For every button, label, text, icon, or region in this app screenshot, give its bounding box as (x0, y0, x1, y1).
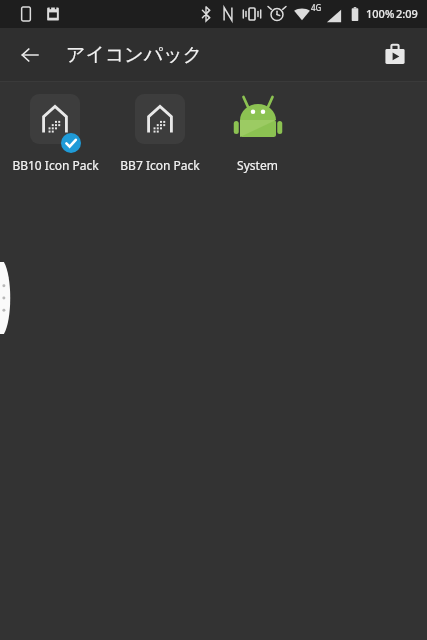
staticText: アイコンパック (66, 43, 203, 67)
staticText: BB10 Icon Pack (12, 157, 99, 173)
button[interactable]: BB10 Icon Pack (0, 86, 110, 173)
staticText: 100% (366, 6, 395, 21)
staticText: BB7 Icon Pack (120, 157, 200, 173)
button[interactable]: Back (8, 33, 52, 77)
staticText: 2:09 (396, 6, 418, 21)
button[interactable]: Open navigation drawer (0, 262, 13, 334)
button[interactable]: BB7 Icon Pack (110, 86, 210, 173)
button[interactable]: Get more icon packs on Google Play (373, 33, 417, 77)
staticText: System (237, 157, 278, 173)
button[interactable]: System (210, 86, 305, 173)
staticText: 4G (311, 2, 322, 13)
